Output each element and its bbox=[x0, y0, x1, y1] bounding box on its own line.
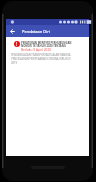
staticText: Pendataan Diri bbox=[22, 29, 50, 34]
staticText: ! bbox=[16, 41, 18, 47]
staticText: PERATURAN MENTERI PERHUBUNGAN bbox=[21, 41, 72, 45]
staticText: Berlaku 9 April 2020 bbox=[21, 48, 52, 52]
staticText: PENCEGAHAN PENYEBARAN CORONA VIRUS DI bbox=[11, 57, 71, 61]
button[interactable]: ! bbox=[8, 38, 82, 66]
staticText: 2019 bbox=[11, 61, 18, 65]
staticText: NOMOR 18 TAHUN 2020 TENTANG bbox=[21, 44, 66, 48]
button[interactable]: Back bbox=[6, 25, 18, 37]
staticText: PENGENDALIAN TRANSPORTASI DALAM RANGKA bbox=[11, 53, 71, 57]
